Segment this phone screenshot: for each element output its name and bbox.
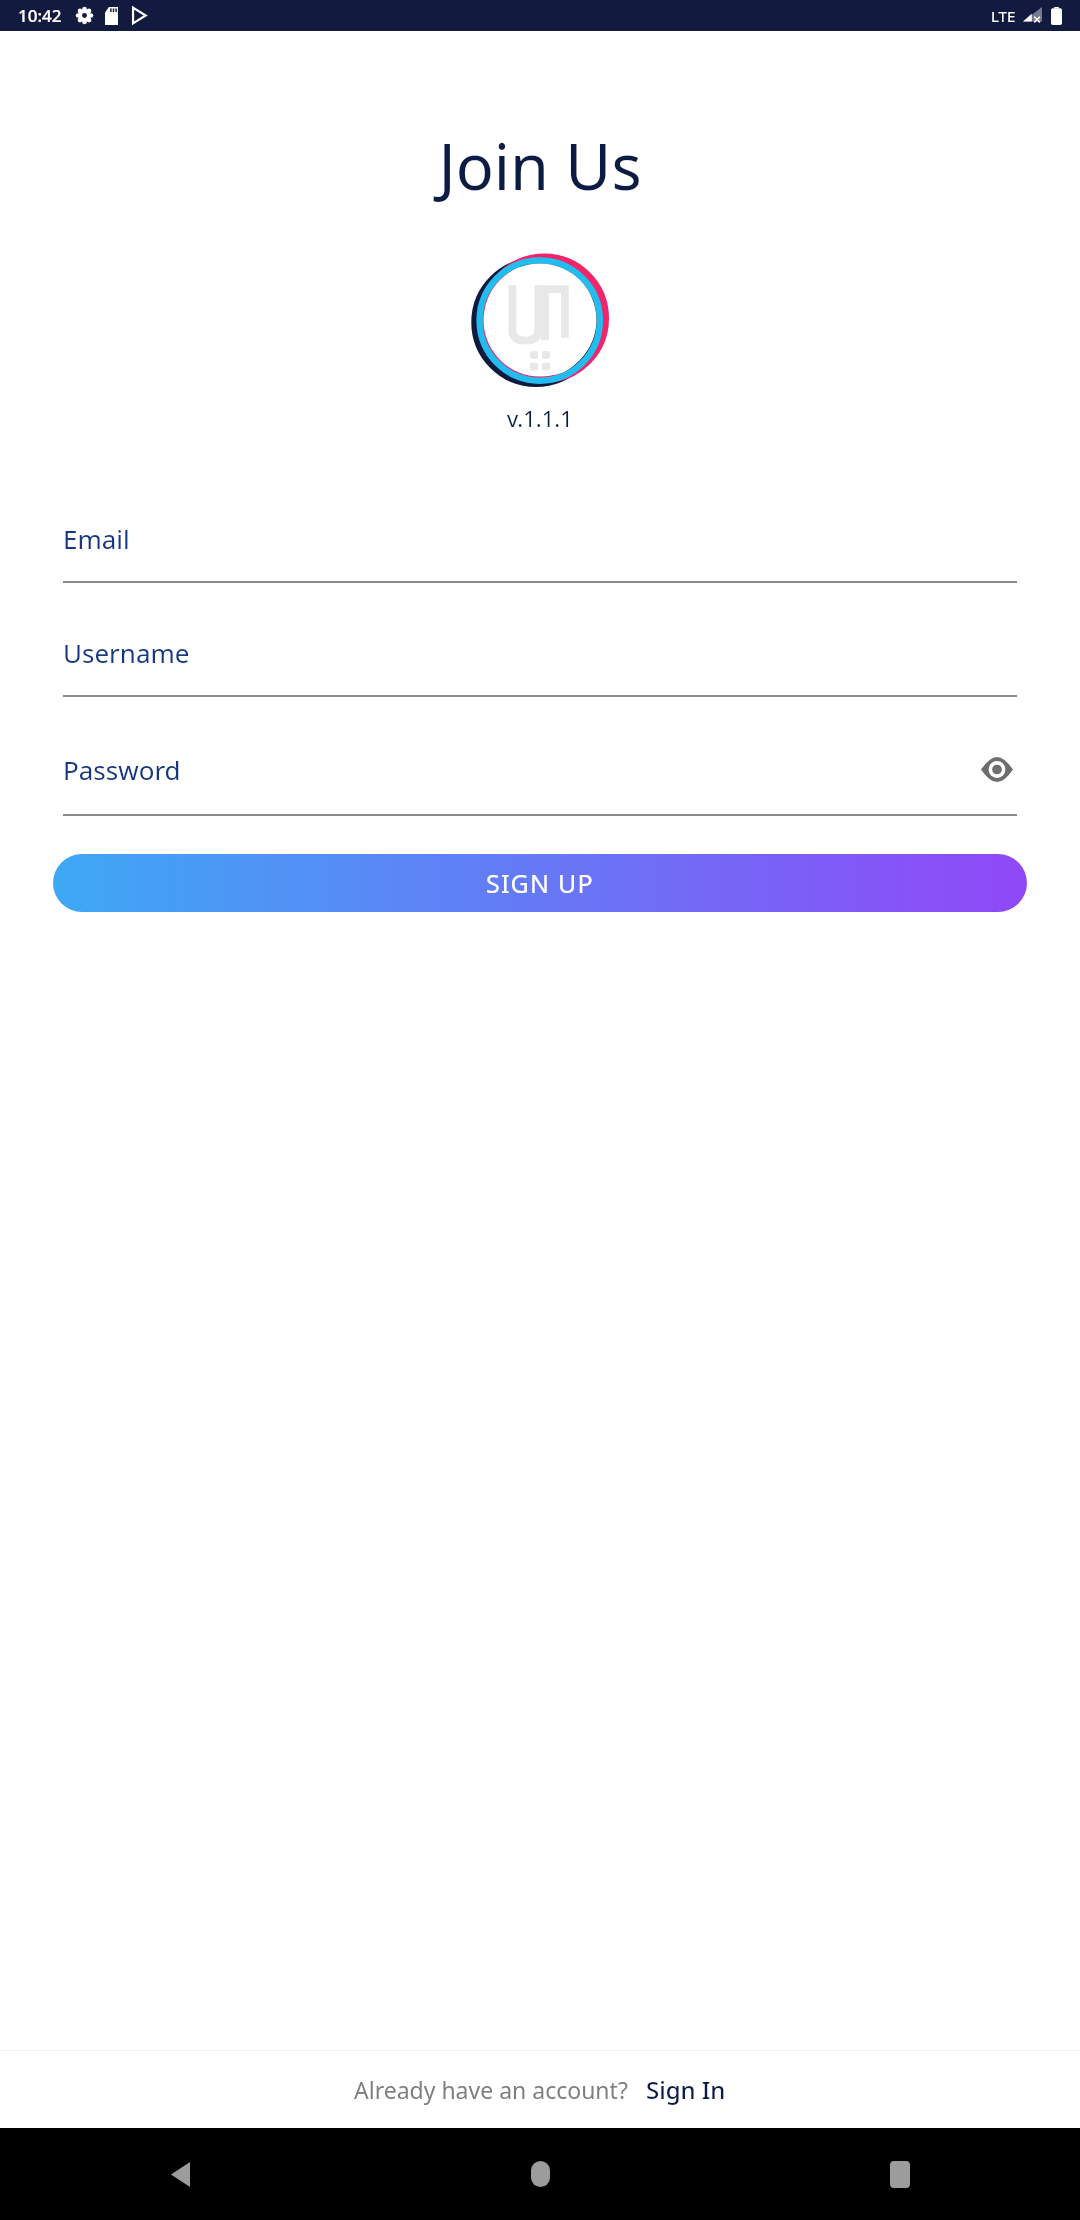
staticText: Email	[63, 521, 1017, 556]
staticText: Already have an account?	[354, 2074, 628, 2105]
button[interactable]: Show password	[977, 749, 1017, 789]
staticText: 10:42	[18, 4, 62, 27]
staticText: LTE	[991, 6, 1016, 26]
button[interactable]: Username	[63, 635, 1017, 697]
button[interactable]: Home	[360, 2128, 720, 2220]
button[interactable]: SIGN UP	[53, 854, 1027, 912]
staticText: v.1.1.1	[507, 403, 573, 433]
staticText: Username	[63, 635, 1017, 670]
staticText: Sign In	[646, 2073, 726, 2106]
button[interactable]: Recent apps	[720, 2128, 1080, 2220]
staticText: SIGN UP	[486, 866, 594, 900]
staticText: Join Us	[438, 123, 642, 209]
button[interactable]: Back	[0, 2128, 360, 2220]
button[interactable]: Email	[63, 521, 1017, 583]
button[interactable]: Password	[63, 749, 1017, 816]
staticText: Password	[63, 752, 977, 787]
button[interactable]: Sign In	[646, 2073, 726, 2106]
